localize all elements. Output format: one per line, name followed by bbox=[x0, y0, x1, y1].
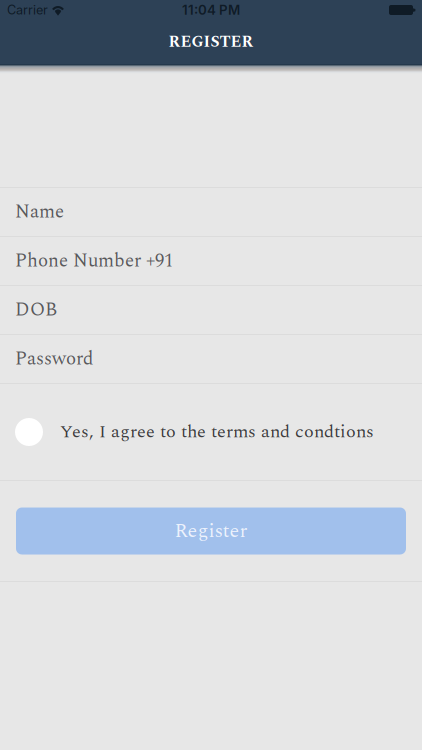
button[interactable]: DOB bbox=[0, 286, 422, 334]
staticText: Register bbox=[174, 516, 247, 546]
staticText: Yes, I agree to the terms and condtions bbox=[60, 418, 374, 446]
button[interactable]: Yes, I agree to the terms and condtions bbox=[0, 384, 422, 480]
button[interactable]: Name bbox=[0, 188, 422, 236]
button[interactable]: Phone Number +91 bbox=[0, 237, 422, 285]
staticText: Carrier bbox=[7, 2, 48, 18]
staticText: 11:04 PM bbox=[182, 2, 240, 18]
button[interactable]: Register bbox=[0, 481, 422, 581]
staticText: Phone Number +91 bbox=[15, 247, 173, 275]
staticText: Name bbox=[15, 198, 64, 226]
staticText: Password bbox=[15, 345, 93, 373]
button[interactable]: Password bbox=[0, 335, 422, 383]
staticText: DOB bbox=[15, 296, 57, 324]
staticText: REGISTER bbox=[168, 30, 253, 54]
